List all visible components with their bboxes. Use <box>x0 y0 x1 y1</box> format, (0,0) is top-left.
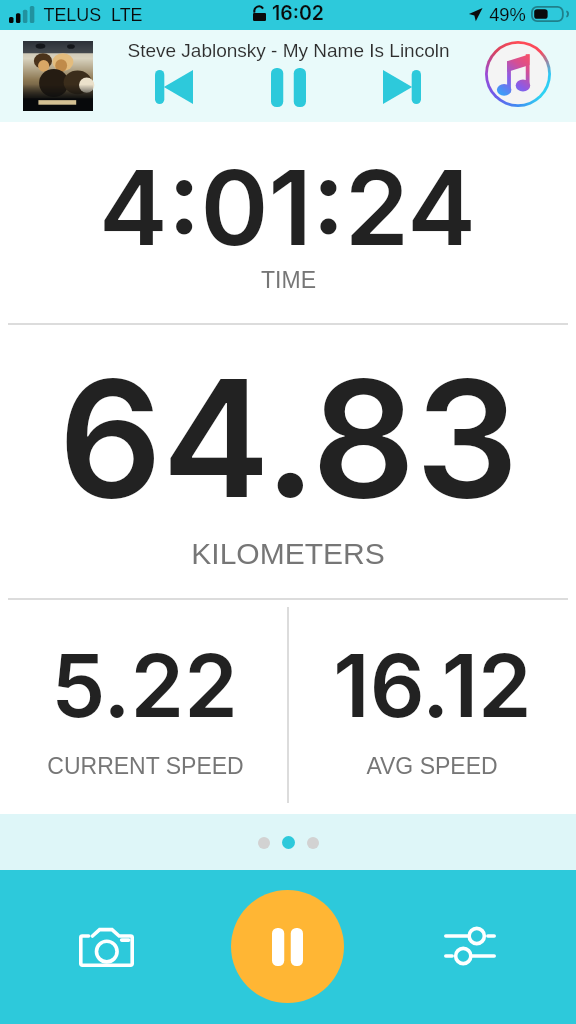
staticText: TELUS LTE <box>43 5 143 25</box>
button[interactable]: Settings <box>410 898 530 998</box>
staticText: 49% <box>489 4 526 24</box>
staticText: CURRENT SPEED <box>47 753 244 779</box>
button[interactable]: Camera <box>46 898 166 998</box>
staticText: KILOMETERS <box>191 537 385 571</box>
staticText: AVG SPEED <box>366 753 498 779</box>
staticText: Steve Jablonsky - My Name Is Lincoln <box>127 40 450 61</box>
button[interactable]: Page 1 <box>258 837 270 849</box>
button[interactable]: Previous track <box>146 65 202 109</box>
button[interactable]: Pause workout <box>231 890 344 1003</box>
staticText: 4:01:24 <box>99 145 476 270</box>
staticText: 64.83 <box>58 340 519 536</box>
staticText: 5.22 <box>51 634 238 738</box>
staticText: 16:02 <box>272 1 324 25</box>
staticText: TIME <box>261 267 316 293</box>
button[interactable]: Page 2 <box>282 836 295 849</box>
button[interactable]: Next track <box>374 65 430 109</box>
button[interactable]: Pause <box>260 65 316 109</box>
button[interactable]: Page 3 <box>307 837 319 849</box>
staticText: 16.12 <box>333 634 532 738</box>
button[interactable]: iTunes <box>485 41 551 107</box>
